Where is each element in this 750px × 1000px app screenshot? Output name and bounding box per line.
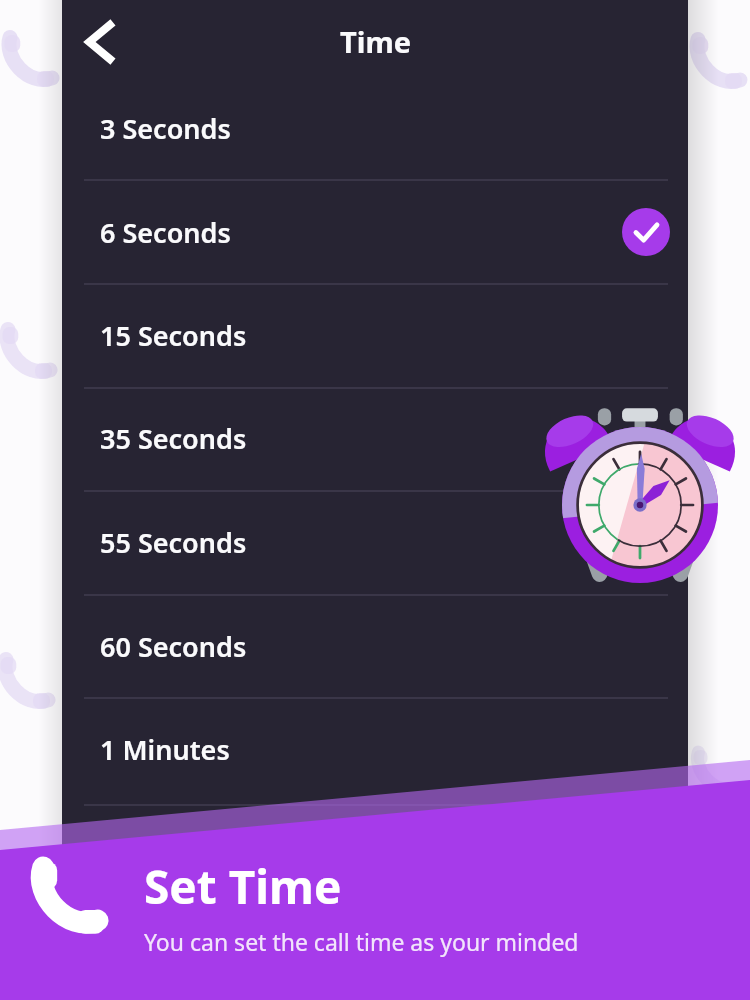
staticText: 3 Seconds [100, 110, 231, 147]
button[interactable]: 1 Minutes [62, 697, 688, 801]
button[interactable]: 60 Seconds [62, 594, 688, 698]
staticText: 6 Seconds [100, 214, 231, 251]
staticText: 60 Seconds [100, 628, 247, 665]
button[interactable]: 15 Seconds [62, 283, 688, 387]
button[interactable]: Set Time [0, 845, 750, 1000]
staticText: You can set the call time as your minded [144, 926, 579, 957]
staticText: 1 Minutes [100, 731, 230, 768]
staticText: 35 Seconds [100, 420, 247, 457]
staticText: Time [340, 22, 411, 61]
button[interactable]: 35 Seconds [62, 386, 688, 490]
button[interactable]: Back [70, 10, 132, 74]
button[interactable]: 55 Seconds [62, 490, 688, 594]
staticText: Set Time [144, 855, 342, 918]
button[interactable]: 6 Seconds [62, 180, 688, 284]
staticText: 15 Seconds [100, 317, 247, 354]
button[interactable]: 3 Seconds [62, 76, 688, 180]
staticText: 55 Seconds [100, 524, 247, 561]
